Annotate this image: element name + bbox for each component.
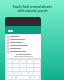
button[interactable] xyxy=(5,50,41,53)
button[interactable] xyxy=(5,41,41,44)
button[interactable] xyxy=(5,35,41,38)
button[interactable] xyxy=(5,38,41,41)
button[interactable] xyxy=(5,44,41,47)
staticText: Easily find remind sheets xyxy=(13,5,52,9)
staticText: with natural search xyxy=(17,9,48,13)
button[interactable] xyxy=(5,47,41,50)
button[interactable]: Search xyxy=(5,26,41,34)
